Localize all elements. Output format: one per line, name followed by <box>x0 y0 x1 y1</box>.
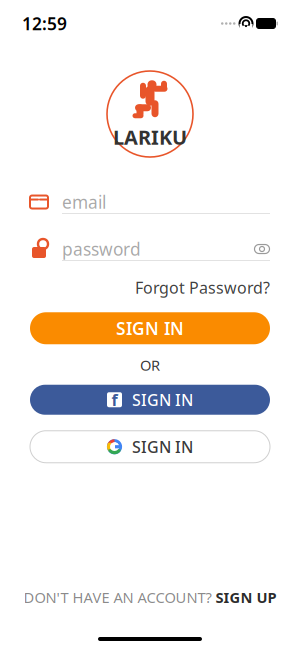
button[interactable]: SIGN IN <box>30 312 270 344</box>
staticText: DON'T HAVE AN ACCOUNT? <box>23 587 211 607</box>
staticText: f <box>111 389 117 410</box>
button[interactable]: DON'T HAVE AN ACCOUNT? <box>11 581 288 613</box>
staticText: 12:59 <box>22 12 67 35</box>
staticText: SIGN IN <box>132 389 193 410</box>
staticText: LARIKU <box>113 124 187 150</box>
staticText: password <box>62 237 141 260</box>
staticText: SIGN UP <box>215 587 276 607</box>
staticText: SIGN IN <box>132 436 193 457</box>
button[interactable]: Show password <box>246 240 270 258</box>
staticText: email <box>62 190 106 213</box>
staticText: OR <box>140 355 160 375</box>
button[interactable]: SIGN IN <box>30 431 270 463</box>
staticText: Forgot Password? <box>135 277 270 298</box>
staticText: SIGN IN <box>116 317 184 340</box>
button[interactable]: Forgot Password? <box>135 273 270 302</box>
button[interactable]: f <box>30 385 270 415</box>
